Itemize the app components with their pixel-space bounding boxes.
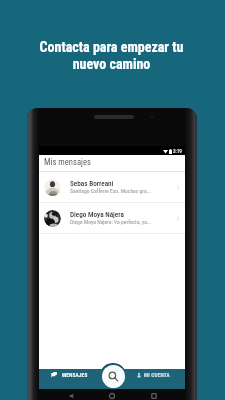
staticText: Contacta para empezar tu nuevo camino bbox=[0, 39, 224, 73]
staticText: Diego Moya Nájera bbox=[70, 210, 124, 218]
button[interactable]: Atrás bbox=[68, 393, 74, 399]
staticText: 3:19 bbox=[173, 148, 182, 154]
button[interactable]: Buscar bbox=[102, 365, 125, 388]
button[interactable]: Inicio bbox=[109, 393, 115, 399]
staticText: Sebas Borreani bbox=[70, 179, 114, 187]
staticText: Diego Moya Nájera: Va perfecto, ya... bbox=[70, 219, 152, 226]
staticText: Mis mensajes bbox=[44, 157, 91, 167]
button[interactable]: Diego Moya Nájera bbox=[39, 203, 185, 233]
staticText: MI CUENTA bbox=[144, 372, 170, 378]
button[interactable]: Navegación bbox=[39, 362, 185, 389]
staticText: Santiago Cafferre Eso. Muchas gra... bbox=[70, 188, 152, 195]
button[interactable]: Recientes bbox=[151, 393, 157, 399]
button[interactable]: Sebas Borreani bbox=[39, 172, 185, 202]
staticText: MENSAJES bbox=[62, 372, 88, 378]
